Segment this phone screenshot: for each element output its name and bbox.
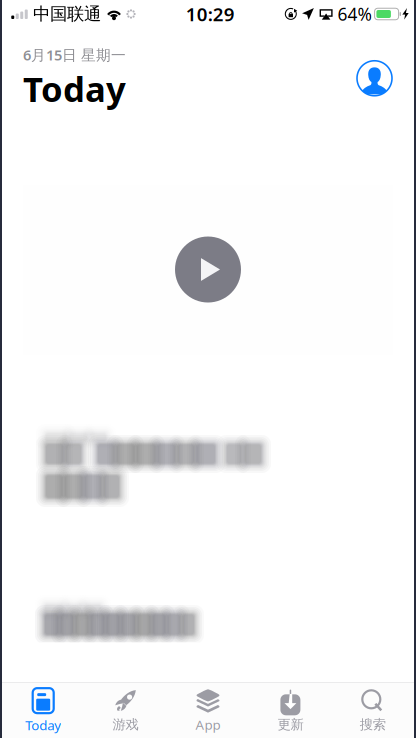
staticText: 游戏 <box>113 716 139 733</box>
staticText: Today <box>23 65 126 111</box>
staticText: 10:29 <box>186 2 235 26</box>
staticText: Today <box>25 716 61 734</box>
button[interactable] <box>23 554 393 642</box>
staticText: 更新 <box>277 716 303 733</box>
staticText: 中国联通 <box>33 3 101 25</box>
staticText: 搜索 <box>360 716 386 733</box>
button[interactable]: 游戏 <box>84 683 167 738</box>
button[interactable]: Play video <box>175 236 241 302</box>
button[interactable] <box>23 147 393 542</box>
button[interactable]: App <box>167 683 249 738</box>
button[interactable]: Account <box>357 61 392 96</box>
staticText: 6月15日 星期一 <box>23 45 126 64</box>
button[interactable]: Today <box>2 683 84 738</box>
staticText: 64% <box>338 2 372 25</box>
button[interactable]: 更新 <box>249 683 332 738</box>
button[interactable]: 搜索 <box>332 683 414 738</box>
staticText: App <box>195 716 220 733</box>
